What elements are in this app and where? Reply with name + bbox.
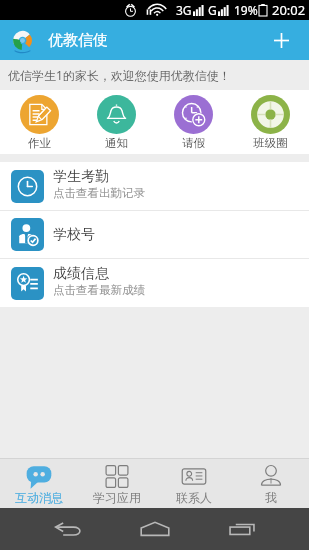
staticText: 学生考勤	[53, 168, 109, 186]
staticText: 点击查看最新成绩	[53, 283, 145, 297]
button[interactable]: 学校号	[0, 211, 309, 258]
button[interactable]: 学生考勤	[0, 162, 309, 210]
button[interactable]: 我	[232, 459, 309, 508]
staticText: 学习应用	[93, 490, 141, 505]
button[interactable]: 互动消息	[0, 459, 78, 508]
button[interactable]: Back	[46, 508, 88, 550]
staticText: 优教信使	[48, 31, 108, 50]
button[interactable]: 请假	[155, 90, 232, 154]
staticText: 学校号	[53, 226, 95, 244]
staticText: 联系人	[176, 490, 212, 505]
staticText: 通知	[105, 136, 128, 150]
button[interactable]: 班级圈	[232, 90, 309, 154]
staticText: 20:02	[272, 1, 306, 19]
staticText: 作业	[28, 136, 51, 150]
staticText: G	[208, 2, 217, 18]
staticText: 成绩信息	[53, 265, 109, 283]
button[interactable]: 联系人	[155, 459, 232, 508]
staticText: 点击查看出勤记录	[53, 186, 145, 200]
staticText: 3G	[176, 2, 192, 18]
button[interactable]: Home	[134, 508, 176, 550]
staticText: 19%	[234, 2, 258, 18]
button[interactable]: Add	[261, 20, 301, 60]
button[interactable]: Recents	[221, 508, 263, 550]
button[interactable]: 学习应用	[78, 459, 155, 508]
staticText: 请假	[182, 136, 205, 150]
button[interactable]: 通知	[78, 90, 155, 154]
staticText: 我	[265, 490, 277, 505]
staticText: 互动消息	[15, 490, 63, 505]
staticText: 班级圈	[253, 136, 288, 150]
button[interactable]: 成绩信息	[0, 259, 309, 307]
staticText: 优信学生1的家长，欢迎您使用优教信使！	[8, 67, 231, 83]
button[interactable]: 作业	[0, 90, 78, 154]
